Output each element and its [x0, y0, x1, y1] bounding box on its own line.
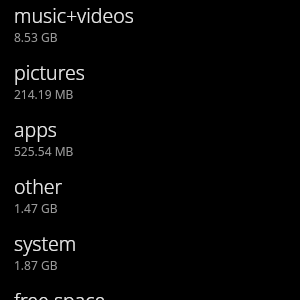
button[interactable]: apps [0, 116, 300, 173]
staticText: other [14, 173, 63, 200]
staticText: 1.87 GB [14, 257, 58, 273]
staticText: free space [14, 287, 106, 300]
staticText: pictures [14, 59, 85, 86]
staticText: 525.54 MB [14, 143, 74, 159]
button[interactable]: system [0, 230, 300, 287]
button[interactable]: free space [0, 287, 300, 300]
button[interactable]: music+videos [0, 2, 300, 59]
button[interactable]: other [0, 173, 300, 230]
staticText: system [14, 230, 77, 257]
staticText: 8.53 GB [14, 29, 58, 45]
button[interactable]: pictures [0, 59, 300, 116]
staticText: music+videos [14, 2, 134, 29]
staticText: 1.47 GB [14, 200, 58, 216]
staticText: apps [14, 116, 57, 143]
staticText: 214.19 MB [14, 86, 74, 102]
